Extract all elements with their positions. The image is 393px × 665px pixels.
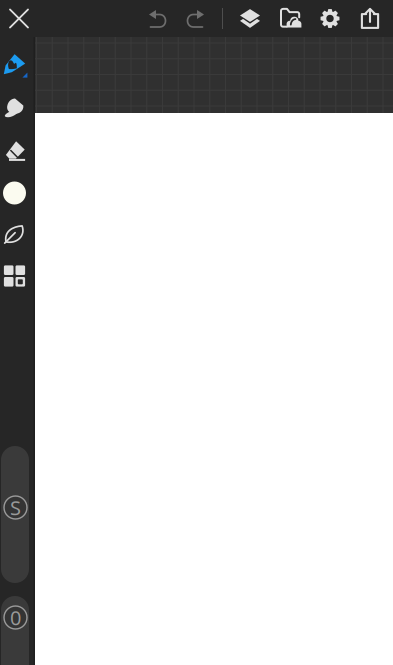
button[interactable]: Layers	[232, 0, 268, 37]
button[interactable]: Colour	[0, 173, 29, 213]
staticText: 0	[10, 604, 21, 631]
button[interactable]: Share	[352, 0, 388, 37]
button[interactable]: Brush settings	[0, 214, 29, 254]
button[interactable]: Files	[272, 0, 308, 37]
button[interactable]: Smudge	[0, 88, 29, 128]
button[interactable]: Redo	[178, 0, 212, 37]
button[interactable]: Close	[0, 0, 38, 37]
staticText: S	[10, 494, 21, 521]
button[interactable]: Pen	[0, 44, 29, 84]
button[interactable]: Undo	[141, 0, 175, 37]
button[interactable]: Brush size	[4, 496, 27, 519]
button[interactable]: Eraser	[0, 131, 29, 171]
button[interactable]: Opacity	[4, 606, 27, 629]
button[interactable]: Settings	[312, 0, 348, 37]
button[interactable]: Layouts	[0, 256, 29, 296]
